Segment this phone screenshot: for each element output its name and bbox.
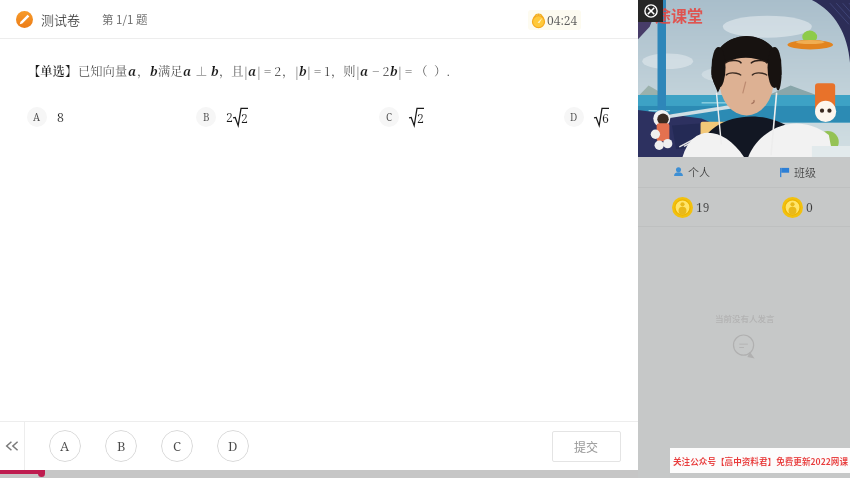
staticText: a — [183, 63, 192, 80]
staticText: | = 2 — [257, 62, 282, 80]
button[interactable]: 收起 — [0, 422, 24, 470]
staticText: 2 — [417, 110, 424, 127]
staticText: ⊥ — [192, 62, 211, 80]
staticText: 提交 — [574, 438, 599, 455]
staticText: D — [570, 110, 578, 124]
staticText: | — [244, 62, 248, 80]
staticText: ， — [137, 62, 150, 80]
staticText: ，且 — [219, 62, 244, 80]
staticText: b — [150, 63, 158, 80]
button[interactable]: 0 — [744, 188, 850, 226]
staticText: 满足 — [158, 62, 183, 80]
staticText: 0 — [806, 199, 813, 215]
staticText: 第 1/1 题 — [102, 11, 148, 28]
staticText: b — [299, 63, 307, 80]
staticText: b — [211, 63, 219, 80]
staticText: 途课堂 — [655, 3, 704, 26]
button[interactable]: B — [105, 430, 137, 462]
staticText: B — [203, 110, 210, 124]
staticText: b — [390, 63, 398, 80]
staticText: A — [33, 110, 41, 124]
staticText: 04:24 — [547, 12, 578, 28]
staticText: 个人 — [688, 164, 710, 180]
staticText: 2 — [241, 110, 248, 127]
button[interactable]: 关闭 — [638, 0, 663, 22]
staticText: D — [228, 437, 238, 455]
staticText: 关注公众号【高中资料君】免费更新2022网课 — [673, 455, 848, 467]
staticText: C — [173, 437, 181, 455]
staticText: 19 — [696, 199, 710, 215]
staticText: a — [128, 63, 137, 80]
staticText: a — [360, 63, 369, 80]
staticText: 测试卷 — [41, 10, 81, 29]
staticText: ，则 — [331, 62, 356, 80]
button[interactable]: 提交 — [552, 431, 621, 462]
staticText: ， — [282, 62, 295, 80]
button[interactable]: A — [49, 430, 81, 462]
button[interactable]: A — [27, 107, 64, 127]
staticText: 2 — [226, 109, 233, 126]
staticText: a — [248, 63, 257, 80]
button[interactable]: D — [217, 430, 249, 462]
staticText: | = （ ）. — [398, 62, 451, 80]
staticText: 当前没有人发言 — [715, 312, 775, 324]
staticText: 8 — [57, 109, 64, 126]
staticText: − 2 — [369, 62, 390, 80]
button[interactable]: C — [161, 430, 193, 462]
staticText: | — [356, 62, 360, 80]
staticText: | = 1 — [307, 62, 331, 80]
staticText: A — [60, 437, 70, 455]
staticText: | — [295, 62, 299, 80]
staticText: 6 — [602, 110, 609, 127]
staticText: 班级 — [794, 164, 816, 180]
button[interactable]: 个人 — [638, 157, 744, 187]
staticText: B — [117, 437, 126, 455]
staticText: 已知向量 — [78, 62, 128, 80]
button[interactable]: 班级 — [744, 157, 850, 187]
button[interactable]: 04:24 — [531, 12, 578, 28]
button[interactable]: C — [379, 107, 424, 127]
button[interactable]: B — [196, 107, 248, 127]
staticText: 【单选】 — [28, 62, 78, 80]
button[interactable]: D — [564, 107, 609, 127]
staticText: C — [386, 110, 393, 124]
button[interactable]: 测试卷 — [16, 0, 81, 39]
button[interactable]: 19 — [638, 188, 744, 226]
